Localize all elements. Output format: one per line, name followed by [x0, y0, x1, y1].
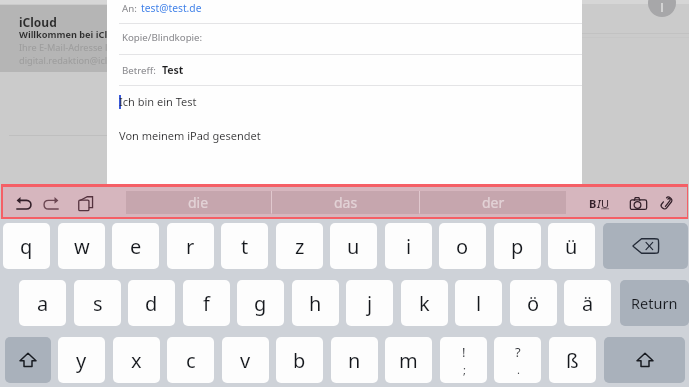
staticText: ö — [527, 290, 540, 317]
staticText: ; — [463, 362, 466, 377]
staticText: o — [456, 233, 469, 260]
staticText: Von meinem iPad gesendet — [119, 128, 261, 143]
staticText: y — [76, 347, 87, 374]
staticText: der — [482, 193, 505, 212]
staticText: m — [399, 347, 418, 374]
staticText: . — [517, 362, 520, 377]
staticText: l — [476, 290, 482, 317]
staticText: Test — [162, 63, 184, 77]
button[interactable]: iCloud — [0, 5, 213, 72]
staticText: t — [241, 233, 249, 260]
button[interactable]: der — [420, 191, 566, 214]
staticText: test@test.de — [141, 1, 202, 15]
button[interactable]: u — [330, 223, 377, 269]
staticText: n — [348, 347, 361, 374]
staticText: u — [347, 233, 360, 260]
button[interactable]: g — [237, 280, 284, 326]
button[interactable]: d — [128, 280, 175, 326]
button[interactable]: ü — [548, 223, 595, 269]
button[interactable]: h — [292, 280, 339, 326]
button[interactable]: l — [455, 280, 502, 326]
staticText: digital.redaktion@icloud.com — [19, 54, 146, 67]
staticText: s — [93, 290, 103, 317]
staticText: d — [145, 290, 158, 317]
staticText: U — [601, 196, 610, 211]
staticText: Betreff: — [122, 64, 156, 77]
button[interactable]: r — [167, 223, 214, 269]
staticText: x — [131, 347, 142, 374]
staticText: p — [511, 233, 524, 260]
button[interactable]: e — [112, 223, 159, 269]
button[interactable]: z — [276, 223, 323, 269]
staticText: i — [406, 233, 412, 260]
button[interactable]: Undo — [13, 194, 34, 213]
button[interactable]: o — [439, 223, 486, 269]
staticText: c — [186, 347, 196, 374]
staticText: e — [130, 233, 142, 260]
staticText: ß — [566, 347, 579, 374]
button[interactable]: Info — [648, 0, 676, 17]
button[interactable]: k — [401, 280, 448, 326]
staticText: w — [74, 233, 90, 260]
button[interactable]: Shift — [5, 337, 51, 383]
staticText: h — [309, 290, 322, 317]
staticText: k — [419, 290, 430, 317]
button[interactable]: i — [385, 223, 432, 269]
staticText: Kopie/Blindkopie: — [122, 31, 203, 44]
staticText: I — [597, 196, 601, 211]
button[interactable]: Redo — [41, 194, 62, 213]
button[interactable]: Copy — [75, 193, 96, 214]
button[interactable]: ß — [549, 337, 596, 383]
staticText: An: — [122, 2, 137, 15]
staticText: ! — [462, 343, 466, 361]
button[interactable]: das — [272, 191, 419, 214]
button[interactable]: q — [3, 223, 50, 269]
staticText: die — [188, 193, 209, 212]
button[interactable]: ö — [510, 280, 557, 326]
button[interactable]: Backspace — [603, 223, 688, 269]
button[interactable]: Text format — [588, 194, 611, 213]
button[interactable]: f — [183, 280, 230, 326]
staticText: Ihre E-Mail-Adresse lautet — [19, 41, 130, 54]
staticText: j — [367, 290, 373, 317]
button[interactable]: b — [276, 337, 323, 383]
staticText: ü — [565, 233, 578, 260]
button[interactable]: y — [58, 337, 105, 383]
button[interactable]: die — [126, 191, 271, 214]
button[interactable]: ! — [440, 337, 487, 383]
button[interactable]: j — [346, 280, 393, 326]
button[interactable]: c — [167, 337, 214, 383]
staticText: r — [186, 233, 195, 260]
button[interactable]: Camera — [627, 194, 650, 213]
staticText: Willkommen bei iCloud — [19, 28, 125, 41]
button[interactable]: ä — [564, 280, 611, 326]
staticText: Return — [631, 293, 678, 313]
staticText: B — [589, 196, 597, 211]
button[interactable]: Attach — [656, 191, 677, 215]
button[interactable]: w — [58, 223, 105, 269]
button[interactable]: m — [385, 337, 432, 383]
button[interactable]: s — [74, 280, 121, 326]
button[interactable]: x — [113, 337, 160, 383]
staticText: Ich bin ein Test — [119, 94, 197, 109]
button[interactable]: Shift — [604, 337, 685, 383]
staticText: q — [20, 233, 33, 260]
staticText: b — [293, 347, 306, 374]
staticText: ? — [515, 343, 521, 361]
staticText: a — [37, 290, 49, 317]
staticText: z — [295, 233, 305, 260]
button[interactable]: ? — [494, 337, 541, 383]
button[interactable]: t — [221, 223, 268, 269]
staticText: v — [240, 347, 251, 374]
button[interactable]: n — [331, 337, 378, 383]
staticText: das — [334, 193, 358, 212]
button[interactable]: v — [222, 337, 269, 383]
button[interactable]: a — [19, 280, 66, 326]
button[interactable]: Return — [620, 280, 689, 326]
staticText: g — [254, 290, 267, 317]
staticText: f — [203, 290, 210, 317]
staticText: ä — [582, 290, 594, 317]
button[interactable]: p — [494, 223, 541, 269]
staticText: iCloud — [19, 14, 57, 30]
